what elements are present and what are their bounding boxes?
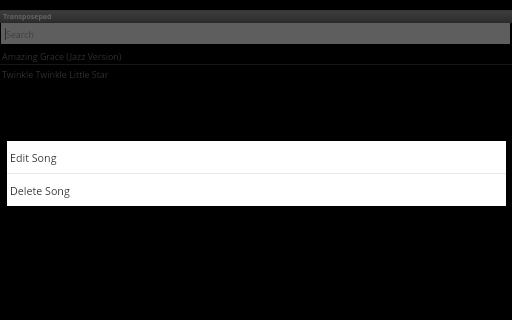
staticText: Search <box>6 28 34 40</box>
staticText: Transposepad <box>3 12 52 22</box>
staticText: Twinkle Twinkle Little Star <box>2 68 109 80</box>
button[interactable]: Twinkle Twinkle Little Star <box>0 65 512 85</box>
button[interactable]: Edit Song <box>7 141 506 173</box>
button[interactable]: Amazing Grace (Jazz Version) <box>0 44 512 64</box>
staticText: Amazing Grace (Jazz Version) <box>2 50 122 62</box>
staticText: Delete Song <box>10 184 70 199</box>
button[interactable]: Delete Song <box>7 174 506 206</box>
staticText: Edit Song <box>10 151 57 166</box>
